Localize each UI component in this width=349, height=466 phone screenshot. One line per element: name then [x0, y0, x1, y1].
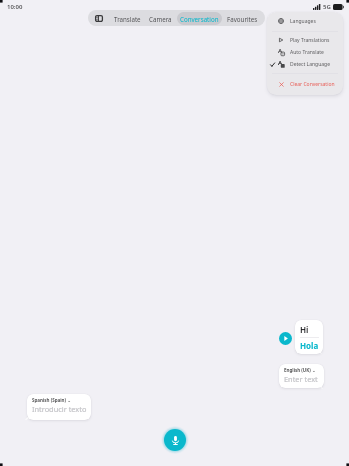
button[interactable]: Show sidebar — [88, 10, 110, 26]
staticText: English (UK) ⌄ — [284, 367, 316, 373]
button[interactable]: Translate — [111, 12, 144, 25]
staticText: Camera — [149, 15, 172, 23]
staticText: 5G — [323, 3, 331, 11]
button[interactable]: Hi — [295, 320, 323, 354]
button[interactable]: Camera — [146, 12, 175, 25]
button[interactable]: Auto Translate — [267, 46, 343, 58]
staticText: Conversation — [180, 15, 219, 23]
button[interactable]: Languages — [267, 15, 343, 27]
button[interactable]: English (UK) ⌄ — [279, 364, 324, 388]
button[interactable]: Favourites — [224, 12, 261, 25]
staticText: Favourites — [227, 15, 258, 23]
staticText: Translate — [114, 15, 141, 23]
button[interactable]: Spanish (Spain) ⌄ — [27, 394, 91, 420]
staticText: Auto Translate — [290, 49, 324, 56]
button[interactable]: Clear Conversation — [267, 78, 343, 90]
staticText: Detect Language — [290, 61, 330, 68]
button[interactable]: Play Translations — [267, 34, 343, 46]
staticText: Play Translations — [290, 37, 330, 44]
button[interactable]: Play translation — [279, 332, 292, 345]
button[interactable]: Detect Language — [267, 58, 343, 70]
button[interactable]: Record voice — [164, 429, 186, 451]
button[interactable]: Conversation — [177, 12, 222, 25]
staticText: Hi — [300, 324, 309, 335]
staticText: Introducir texto — [32, 404, 87, 414]
staticText: 10:00 — [7, 3, 23, 11]
staticText: Spanish (Spain) ⌄ — [32, 397, 71, 403]
staticText: Hola — [300, 340, 319, 350]
staticText: Clear Conversation — [290, 81, 335, 88]
staticText: Enter text — [284, 374, 318, 384]
staticText: Languages — [290, 18, 316, 25]
